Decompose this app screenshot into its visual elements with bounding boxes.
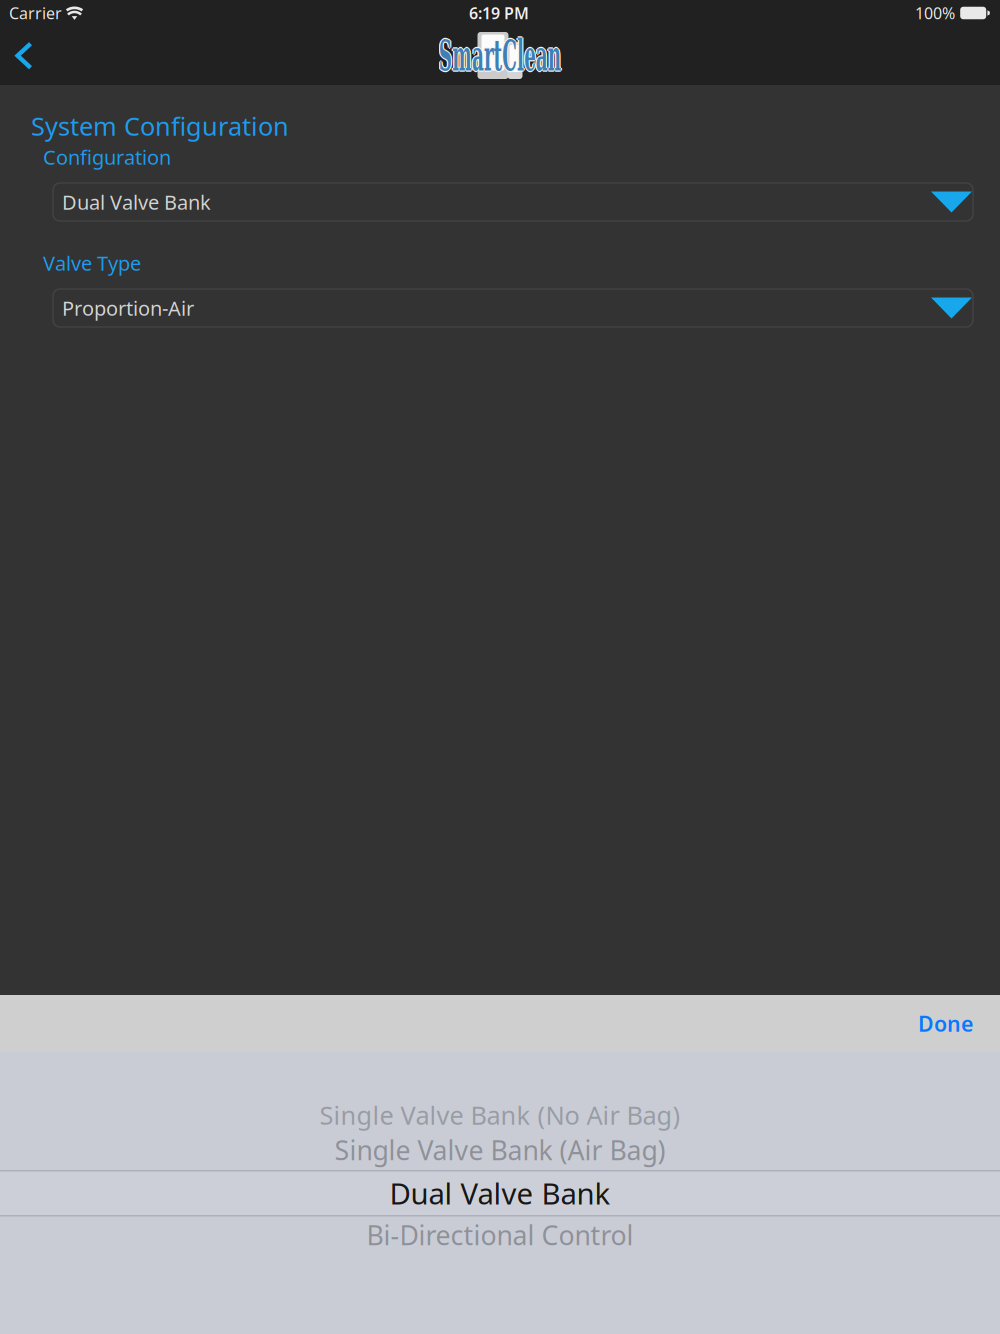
staticText: SmartClean [372,29,627,79]
staticText: Valve Type [43,250,141,276]
button[interactable]: Back [0,26,48,85]
button[interactable]: Dual Valve Bank [0,1173,1000,1213]
button[interactable]: Single Valve Bank (Air Bag) [0,1130,1000,1170]
staticText: 6:19 PM [469,2,529,24]
button[interactable]: Single Valve Bank (No Air Bag) [0,1095,1000,1135]
staticText: Proportion-Air [62,295,194,321]
staticText: System Configuration [31,109,289,143]
button[interactable]: Done [898,995,1000,1052]
staticText: SmartClean [372,32,627,82]
staticText: Configuration [43,144,171,170]
staticText: 100% [915,2,955,24]
staticText: Carrier [9,2,62,24]
staticText: SmartClean [372,30,627,80]
button[interactable]: Bi-Directional Control [0,1215,1000,1255]
staticText: Done [918,1009,973,1038]
staticText: Dual Valve Bank [389,1173,610,1212]
staticText: Dual Valve Bank [62,189,211,215]
staticText: SmartClean [374,30,629,80]
staticText: Bi-Directional Control [366,1217,633,1253]
button[interactable]: Dual Valve Bank [53,183,973,221]
staticText: SmartClean [371,30,626,80]
button[interactable]: Proportion-Air [53,289,973,327]
staticText: Single Valve Bank (No Air Bag) [319,1098,680,1132]
staticText: Single Valve Bank (Air Bag) [334,1132,665,1168]
